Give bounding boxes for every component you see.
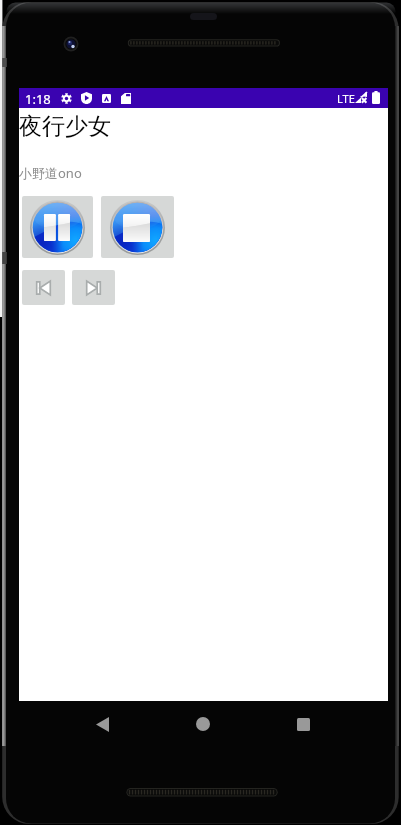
staticText: 小野道ono xyxy=(19,164,82,182)
staticText: 夜行少女 xyxy=(19,112,111,141)
button[interactable]: Back xyxy=(90,712,114,736)
staticText: 1:18 xyxy=(25,90,51,108)
button[interactable]: Stop xyxy=(101,196,174,258)
button[interactable]: Pause xyxy=(22,196,93,258)
button[interactable]: Previous track xyxy=(22,270,65,305)
staticText: LTE xyxy=(337,91,355,106)
button[interactable]: Home xyxy=(191,712,215,736)
button[interactable]: Next track xyxy=(72,270,115,305)
button[interactable]: Recents xyxy=(291,712,315,736)
